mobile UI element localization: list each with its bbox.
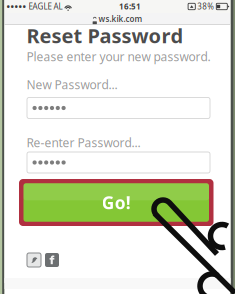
staticText: Go! [102, 191, 131, 214]
staticText: EAGLE AL [26, 1, 64, 12]
button[interactable]: Go! [19, 179, 213, 226]
staticText: ws.kik.com [98, 14, 142, 24]
staticText: Please enter your new password. [26, 48, 210, 64]
staticText: Re-enter Password... [26, 134, 140, 150]
button[interactable]: Share on Facebook [45, 253, 59, 267]
staticText: ••••• [6, 0, 26, 13]
staticText: 16:51 [119, 1, 141, 12]
staticText: 38% [195, 1, 216, 12]
button[interactable]: Share on Twitter [27, 253, 41, 267]
staticText: Reset Password [26, 22, 183, 49]
staticText: New Password... [26, 76, 117, 92]
